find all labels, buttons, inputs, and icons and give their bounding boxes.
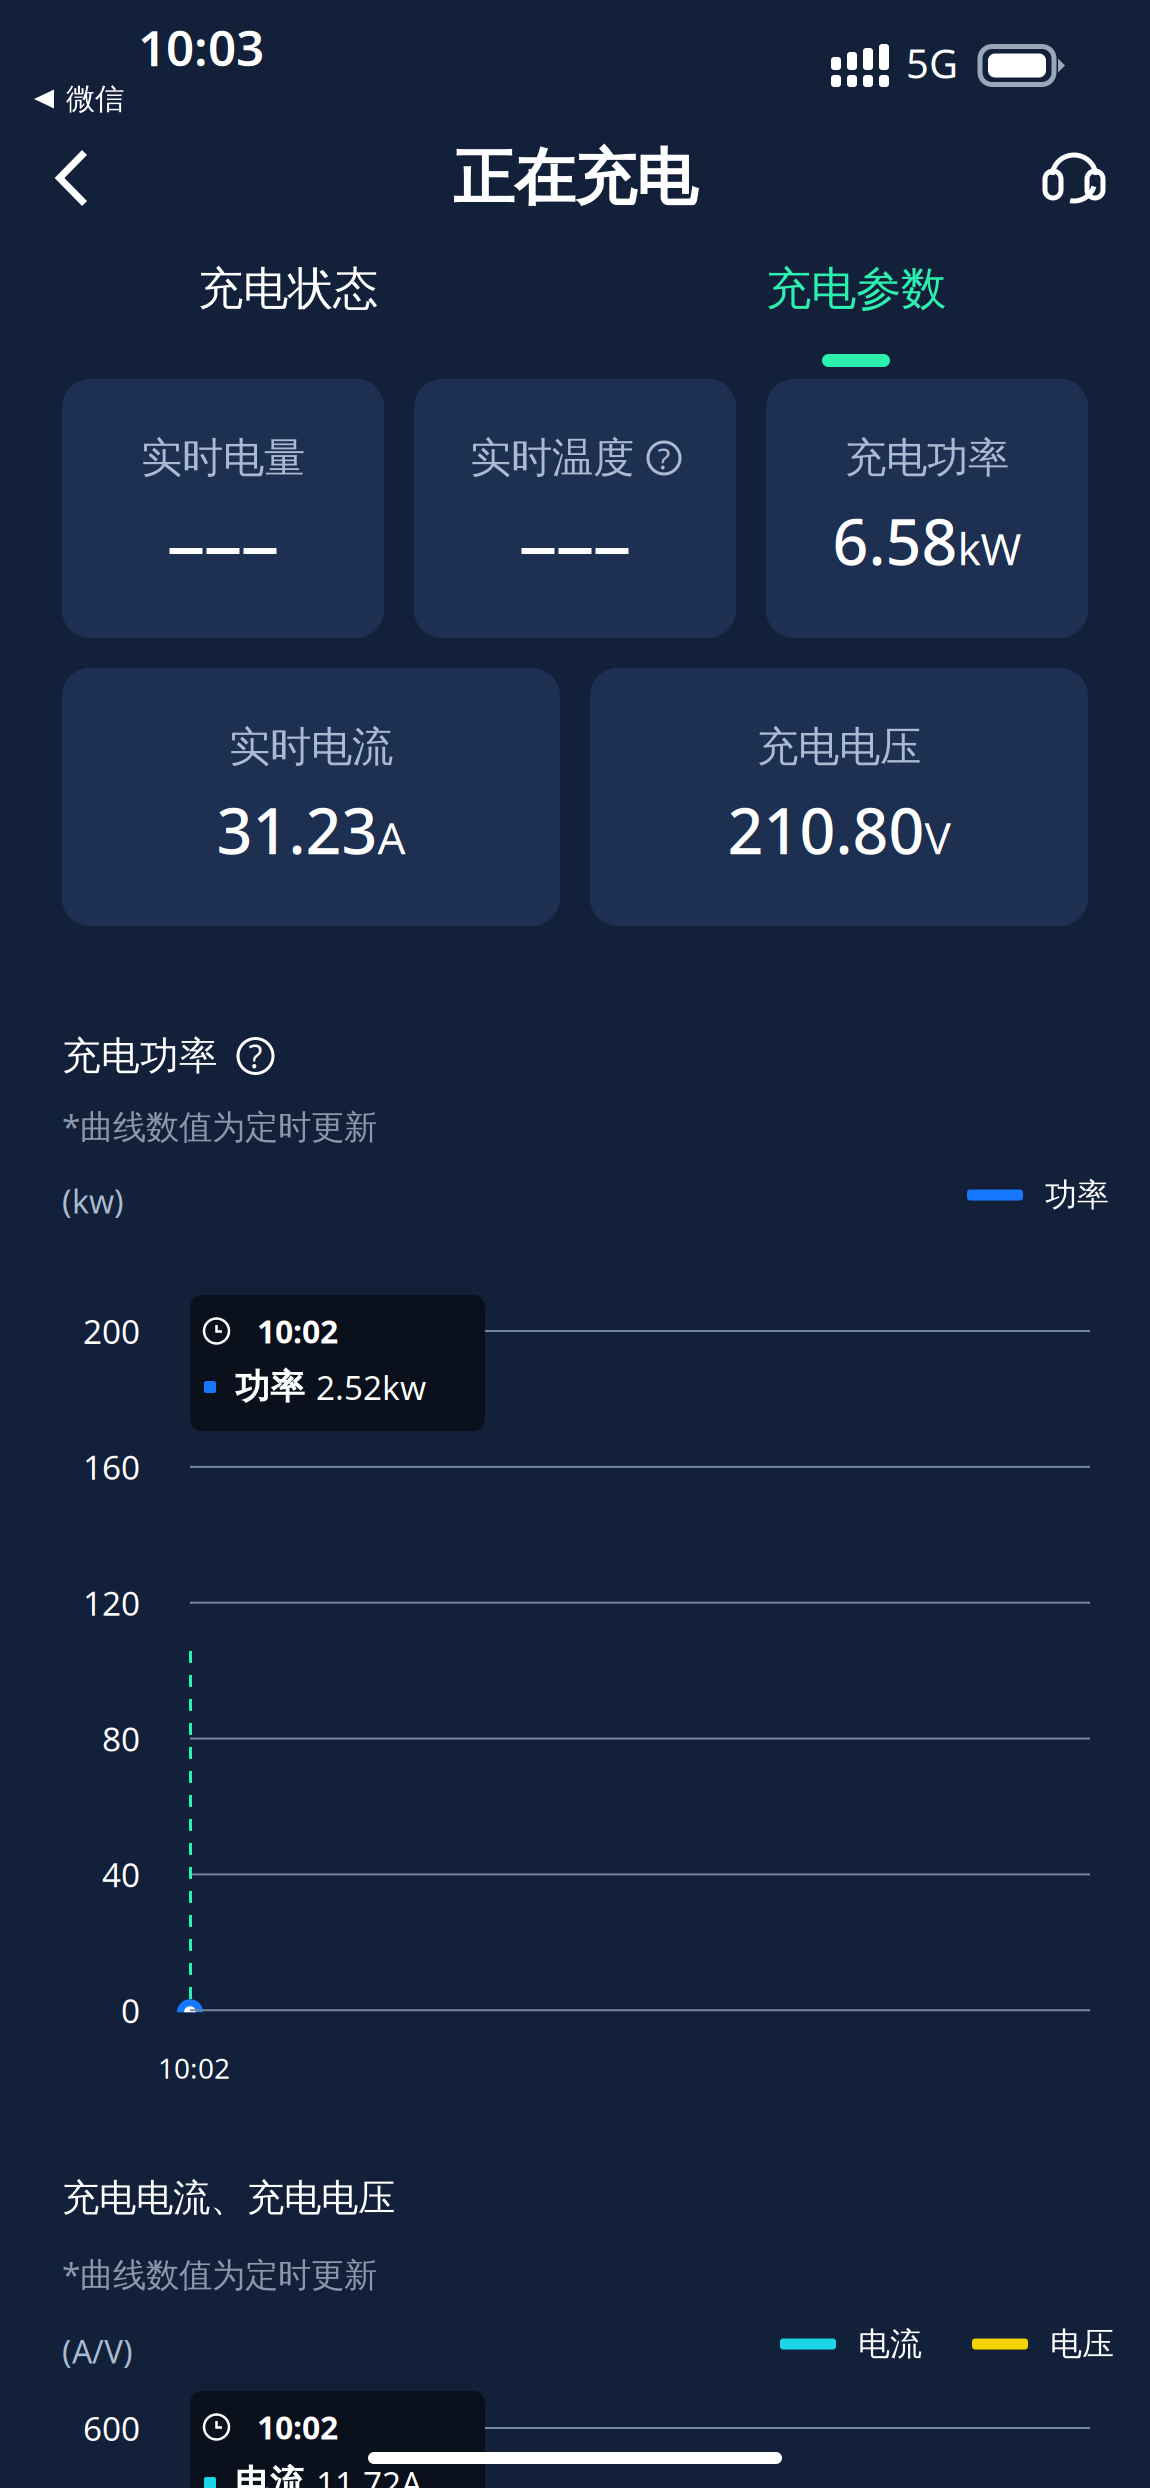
staticText: 10:02 <box>257 1310 338 1352</box>
staticText: 10:03 <box>138 14 264 80</box>
staticText: 600 <box>83 2406 140 2450</box>
staticText: *曲线数值为定时更新 <box>62 1104 377 1148</box>
staticText: 实时电流 <box>229 722 393 772</box>
staticText: 实时温度 <box>470 433 634 483</box>
staticText: 功率 <box>1045 1175 1109 1215</box>
staticText: 2.52kw <box>316 1365 426 1409</box>
staticText: ? <box>657 438 670 477</box>
button[interactable]: 充电参数 <box>572 262 1140 367</box>
staticText: A <box>377 808 405 866</box>
staticText: 40 <box>102 1852 140 1897</box>
staticText: 充电状态 <box>198 261 378 317</box>
staticText: 160 <box>83 1445 140 1489</box>
button[interactable]: Customer support <box>1022 126 1126 230</box>
staticText: *曲线数值为定时更新 <box>62 2252 377 2296</box>
staticText: 电压 <box>1050 2324 1114 2364</box>
staticText: 正在充电 <box>453 140 697 216</box>
staticText: (A/V) <box>62 2330 133 2372</box>
staticText: 10:02 <box>257 2406 338 2448</box>
button[interactable]: 微信 <box>34 80 124 118</box>
staticText: 6.58 <box>832 499 957 583</box>
staticText: 80 <box>102 1716 140 1761</box>
staticText: 200 <box>83 1309 140 1353</box>
staticText: 充电功率 <box>62 1032 218 1080</box>
staticText: 0 <box>121 1988 140 2032</box>
staticText: 充电参数 <box>766 261 946 317</box>
staticText: ? <box>248 1035 262 1077</box>
staticText: 电流 <box>858 2324 922 2364</box>
staticText: (kw) <box>62 1180 124 1222</box>
staticText: 电流 <box>235 2462 305 2488</box>
staticText: kW <box>957 519 1021 577</box>
staticText: 11.72A <box>316 2461 422 2488</box>
staticText: V <box>924 808 950 866</box>
staticText: 微信 <box>66 81 124 117</box>
staticText: 31.23 <box>216 788 377 872</box>
staticText: 210.80 <box>727 788 924 872</box>
staticText: 10:02 <box>158 2049 230 2087</box>
staticText: 充电功率 <box>845 433 1009 483</box>
staticText: 充电电流、充电电压 <box>62 2175 395 2221</box>
staticText: 功率 <box>235 1366 305 1408</box>
button[interactable]: Back <box>24 126 120 230</box>
staticText: 充电电压 <box>757 722 921 772</box>
button[interactable]: 充电状态 <box>4 262 572 367</box>
staticText: 5G <box>906 36 958 89</box>
staticText: 实时电量 <box>141 433 305 483</box>
staticText: 120 <box>83 1581 140 1625</box>
